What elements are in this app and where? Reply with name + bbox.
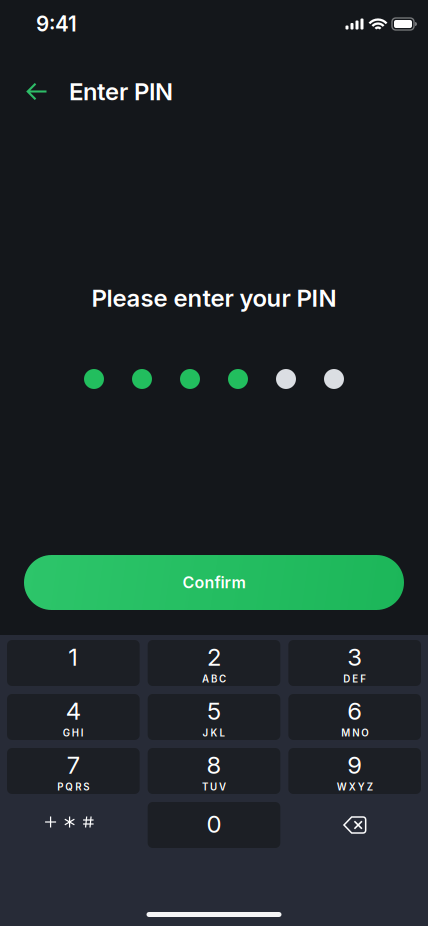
staticText: Please enter your PIN xyxy=(91,283,336,313)
button[interactable]: Confirm xyxy=(24,555,404,610)
staticText: A B C xyxy=(202,673,226,685)
staticText: Confirm xyxy=(182,573,245,592)
button[interactable]: 5 xyxy=(148,694,280,740)
staticText: G H I xyxy=(63,727,84,739)
button[interactable]: 2 xyxy=(148,640,280,686)
button[interactable]: 0 xyxy=(148,802,280,848)
staticText: 6 xyxy=(347,696,362,725)
button[interactable]: 3 xyxy=(288,640,421,686)
button[interactable]: 4 xyxy=(7,694,140,740)
staticText: 0 xyxy=(206,809,221,838)
staticText: D E F xyxy=(343,673,366,685)
staticText: 4 xyxy=(66,696,81,725)
staticText: M N O xyxy=(341,727,368,739)
staticText: 9 xyxy=(347,750,362,779)
staticText: J K L xyxy=(202,727,225,739)
staticText: 7 xyxy=(67,750,80,779)
button[interactable]: 8 xyxy=(148,748,280,794)
staticText: 8 xyxy=(206,750,221,779)
button[interactable]: 6 xyxy=(288,694,421,740)
staticText: 1 xyxy=(68,642,78,671)
staticText: 3 xyxy=(347,642,362,671)
staticText: 5 xyxy=(207,696,221,725)
button[interactable]: Delete xyxy=(288,802,421,848)
button[interactable]: Back xyxy=(15,69,59,113)
button[interactable]: Symbols xyxy=(7,802,140,848)
staticText: 9:41 xyxy=(36,11,77,36)
button[interactable]: 1 xyxy=(7,640,140,686)
staticText: Enter PIN xyxy=(69,77,173,106)
staticText: T U V xyxy=(202,781,226,793)
button[interactable]: 9 xyxy=(288,748,421,794)
button[interactable]: 7 xyxy=(7,748,140,794)
staticText: 2 xyxy=(207,642,221,671)
staticText: P Q R S xyxy=(57,781,89,793)
staticText: W X Y Z xyxy=(337,781,373,793)
